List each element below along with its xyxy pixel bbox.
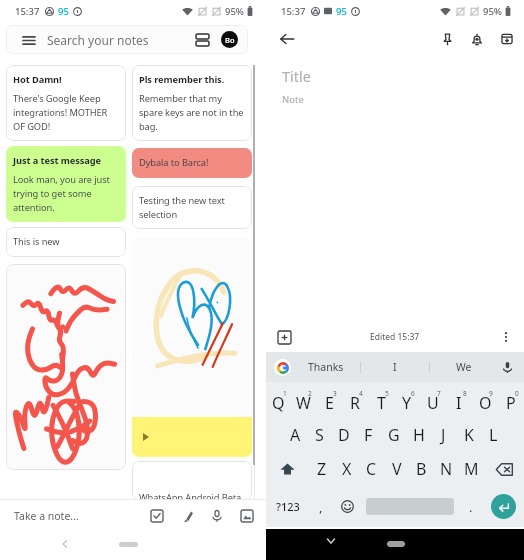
button[interactable]: M — [459, 452, 484, 486]
button[interactable]: New drawing — [176, 505, 198, 527]
button[interactable]: 6 — [394, 382, 420, 418]
staticText: Y — [402, 392, 412, 414]
button[interactable]: L — [481, 418, 506, 452]
button[interactable]: Toggle view — [192, 30, 212, 50]
staticText: We — [456, 360, 472, 374]
staticText: Thanks — [308, 360, 344, 374]
staticText: P — [506, 392, 516, 414]
button[interactable]: Take a note... — [14, 509, 79, 523]
button[interactable]: 5 — [368, 382, 394, 418]
staticText: R — [350, 392, 360, 414]
staticText: ?123 — [276, 499, 300, 514]
button[interactable]: WhatsApp Android Beta — [132, 461, 252, 500]
button[interactable] — [6, 264, 126, 470]
button[interactable]: Testing the new text selection — [132, 186, 252, 229]
button[interactable]: New voice note — [206, 505, 228, 527]
button[interactable]: Archive — [495, 27, 519, 51]
button[interactable] — [132, 417, 252, 457]
button[interactable]: C — [359, 452, 384, 486]
button[interactable]: Just a test message — [6, 146, 126, 222]
staticText: 15:37 — [281, 5, 306, 18]
staticText: . — [469, 498, 473, 516]
staticText: Q — [272, 392, 285, 414]
button[interactable]: J — [431, 418, 456, 452]
button[interactable]: Z — [309, 452, 334, 486]
button[interactable]: Pin note — [435, 27, 459, 51]
button[interactable]: Dybala to Barca! — [132, 148, 252, 178]
staticText: A — [290, 424, 301, 446]
staticText: Z — [317, 458, 327, 480]
staticText: 0 — [515, 389, 519, 398]
button[interactable]: I — [393, 360, 397, 374]
button[interactable]: V — [384, 452, 409, 486]
staticText: O — [479, 392, 492, 414]
button[interactable]: Emoji — [333, 486, 361, 527]
staticText: 2 — [308, 389, 312, 398]
staticText: I — [393, 360, 397, 374]
staticText: 95 — [58, 5, 69, 18]
other: Back — [61, 540, 68, 548]
staticText: C — [366, 458, 377, 480]
button[interactable]: 1 — [266, 382, 291, 418]
button[interactable] — [132, 238, 252, 417]
button[interactable]: 7 — [420, 382, 446, 418]
button[interactable]: A — [283, 418, 307, 452]
button[interactable]: K — [456, 418, 481, 452]
button[interactable]: . — [459, 486, 483, 527]
button[interactable]: Thanks — [308, 360, 344, 374]
button[interactable]: , — [309, 486, 333, 527]
staticText: Take a note... — [14, 509, 79, 523]
button[interactable]: 0 — [498, 382, 524, 418]
button[interactable]: 8 — [446, 382, 472, 418]
button[interactable]: B — [409, 452, 434, 486]
staticText: Hot Damn! — [13, 73, 62, 86]
button[interactable]: ?123 — [266, 486, 309, 527]
button[interactable]: F — [356, 418, 381, 452]
staticText: WhatsApp Android Beta — [139, 491, 242, 500]
button[interactable]: Menu — [6, 25, 248, 54]
button[interactable]: 3 — [316, 382, 342, 418]
button[interactable]: New list — [146, 505, 168, 527]
button[interactable]: We — [456, 360, 472, 374]
button[interactable]: Add — [274, 327, 294, 347]
button[interactable]: Voice input — [498, 358, 516, 376]
button[interactable]: Google — [274, 359, 291, 376]
button[interactable]: More options — [496, 327, 516, 347]
staticText: Just a test message — [13, 154, 101, 167]
button[interactable]: Account — [221, 31, 238, 48]
button[interactable]: Reminder — [465, 27, 489, 51]
button[interactable]: D — [331, 418, 356, 452]
button[interactable]: Enter — [491, 494, 516, 519]
button[interactable]: X — [334, 452, 359, 486]
button[interactable]: Pls remember this. — [132, 65, 252, 141]
button[interactable]: This is new — [6, 227, 126, 257]
staticText: K — [464, 424, 474, 446]
staticText: S — [315, 424, 324, 446]
button[interactable]: H — [406, 418, 431, 452]
button[interactable]: Menu — [20, 31, 38, 49]
button[interactable]: New image note — [236, 505, 258, 527]
staticText: I — [456, 392, 462, 414]
staticText: 5 — [385, 389, 389, 398]
button[interactable]: G — [381, 418, 406, 452]
other: Hide keyboard — [327, 538, 335, 544]
staticText: Edited 15:37 — [370, 331, 420, 343]
staticText: Note — [282, 93, 304, 106]
staticText: F — [364, 424, 373, 446]
button[interactable]: N — [434, 452, 459, 486]
staticText: D — [338, 424, 350, 446]
button[interactable]: 9 — [472, 382, 498, 418]
staticText: This is new — [13, 235, 60, 248]
button[interactable]: Back — [275, 27, 299, 51]
staticText: 3 — [333, 389, 337, 398]
staticText: Look man, you are just trying to get som… — [13, 173, 119, 213]
button[interactable]: S — [307, 418, 331, 452]
button[interactable]: 2 — [291, 382, 316, 418]
button[interactable]: Hot Damn! — [6, 65, 126, 141]
staticText: Search your notes — [47, 32, 149, 48]
staticText: E — [325, 392, 334, 414]
button[interactable]: 4 — [342, 382, 368, 418]
button[interactable]: Shift — [266, 452, 309, 486]
button[interactable]: Backspace — [484, 452, 524, 486]
